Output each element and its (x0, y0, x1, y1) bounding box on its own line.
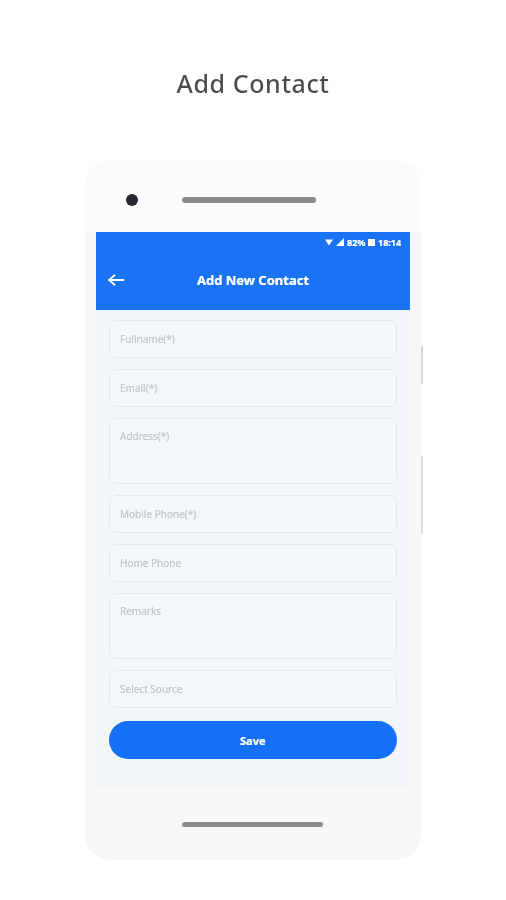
staticText: Add Contact (0, 66, 506, 100)
staticText: Select Source (120, 682, 183, 696)
staticText: Mobile Phone(*) (120, 507, 197, 521)
staticText: Save (240, 733, 266, 748)
button[interactable]: Back (96, 260, 136, 300)
button[interactable]: Address(*) (109, 418, 397, 484)
button[interactable]: Home Phone (109, 544, 397, 582)
button[interactable]: Mobile Phone(*) (109, 495, 397, 533)
button[interactable]: Save (109, 721, 397, 759)
staticText: Home Phone (120, 556, 182, 570)
staticText: Remarks (120, 604, 162, 618)
button[interactable]: Select Source (109, 670, 397, 708)
staticText: Email(*) (120, 381, 158, 395)
button[interactable]: Email(*) (109, 369, 397, 407)
staticText: Add New Contact (96, 271, 410, 289)
button[interactable]: Fullname(*) (109, 320, 397, 358)
staticText: 82% (347, 236, 366, 248)
button[interactable]: Remarks (109, 593, 397, 659)
staticText: 18:14 (378, 236, 402, 248)
staticText: Address(*) (120, 429, 170, 443)
staticText: Fullname(*) (120, 332, 175, 346)
